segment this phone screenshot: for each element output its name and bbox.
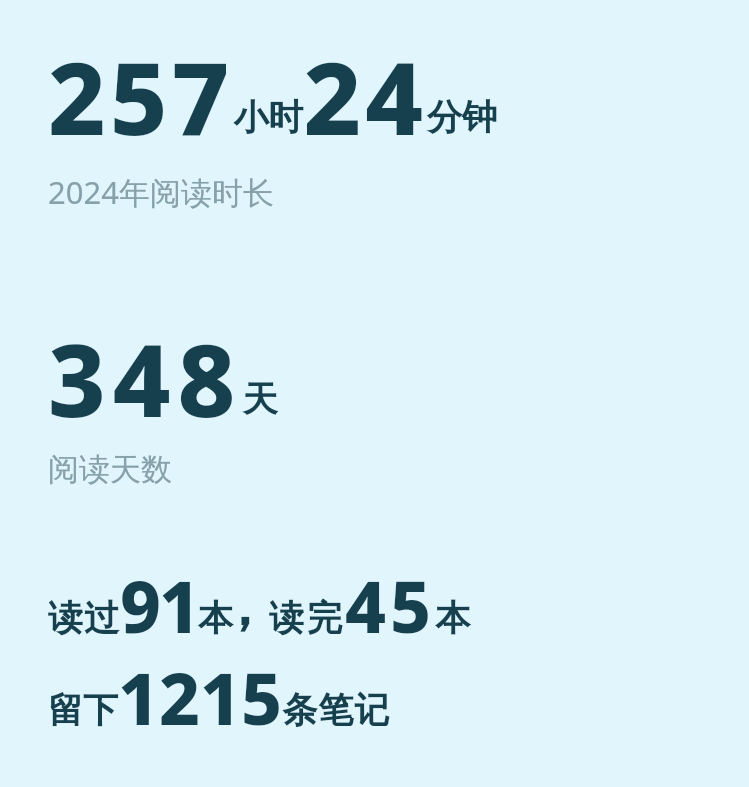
staticText: 257小时24分钟 xyxy=(48,28,497,164)
staticText: 348天 xyxy=(48,310,278,446)
staticText: 读过91本，读完45本 xyxy=(48,557,477,654)
staticText: 2024年阅读时长 xyxy=(48,171,274,213)
staticText: 留下1215条笔记 xyxy=(48,649,391,746)
staticText: 阅读天数 xyxy=(48,450,172,489)
staticText: ， xyxy=(218,575,270,641)
